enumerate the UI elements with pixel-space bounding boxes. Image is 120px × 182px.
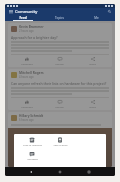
- staticText: Approach for a brighter day?: [11, 35, 58, 40]
- button[interactable]: Feed: [5, 15, 41, 21]
- staticText: Share: [89, 62, 96, 65]
- button[interactable]: Save to Drive: [46, 137, 74, 147]
- staticText: Community: [15, 9, 38, 14]
- staticText: Upvote: [55, 105, 64, 108]
- button[interactable]: Home: [57, 169, 63, 175]
- staticText: Kevin Brammer: [19, 25, 44, 29]
- staticText: Feed: [19, 16, 27, 20]
- button[interactable]: Copy to clipboard: [18, 137, 46, 147]
- button[interactable]: Share: [76, 57, 109, 65]
- staticText: Upvote: [55, 62, 64, 65]
- staticText: Share: [89, 105, 96, 108]
- button[interactable]: Hillary Schmidt: [8, 112, 112, 167]
- staticText: Save to Drive: [53, 144, 68, 147]
- button[interactable]: Messages: [18, 151, 46, 161]
- staticText: 2 hours ago: [19, 29, 34, 33]
- button[interactable]: Share: [76, 100, 109, 108]
- button[interactable]: Upvote: [43, 100, 76, 108]
- staticText: 6 hours ago: [19, 118, 34, 122]
- button[interactable]: Mitchell Rogers: [8, 69, 112, 110]
- staticText: Messages: [27, 158, 38, 161]
- staticText: Can anyone refresh their lists on hardwa…: [11, 81, 107, 86]
- button[interactable]: Back: [28, 169, 34, 175]
- staticText: Comment: [21, 105, 33, 108]
- button[interactable]: Open navigation menu: [8, 9, 13, 14]
- button[interactable]: Me: [78, 15, 115, 21]
- button[interactable]: Kevin Brammer: [8, 23, 112, 67]
- button[interactable]: Upvote: [43, 57, 76, 65]
- button[interactable]: Recent apps: [86, 169, 92, 175]
- staticText: 4 hours ago: [19, 75, 34, 79]
- staticText: Hillary Schmidt: [19, 114, 44, 118]
- button[interactable]: Comment: [11, 100, 43, 108]
- button[interactable]: Topics: [41, 15, 78, 21]
- staticText: Me: [94, 16, 99, 20]
- button[interactable]: Search: [107, 9, 112, 14]
- staticText: Mitchell Rogers: [19, 71, 44, 75]
- staticText: Comment: [21, 62, 33, 65]
- staticText: Topics: [55, 16, 64, 20]
- staticText: Copy to clipboard: [23, 144, 42, 147]
- button[interactable]: Comment: [11, 57, 43, 65]
